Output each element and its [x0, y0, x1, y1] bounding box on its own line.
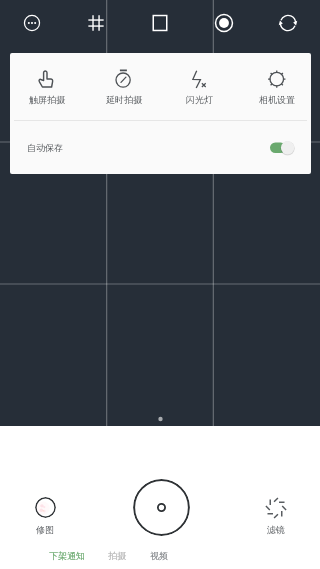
staticText: 修图 [36, 524, 54, 535]
staticText: 下架通知 [49, 550, 85, 561]
button[interactable]: 拍摄 [102, 545, 132, 566]
button[interactable]: Switch camera [256, 0, 320, 45]
staticText: 延时拍摄 [106, 94, 142, 105]
button[interactable]: 自动保存 [10, 121, 311, 174]
staticText: 滤镜 [267, 524, 285, 535]
button[interactable]: 视频 [144, 545, 174, 566]
button[interactable]: 下架通知 [43, 545, 91, 566]
button[interactable]: 修图 [25, 497, 65, 535]
button[interactable]: 闪光灯 [161, 53, 238, 120]
button[interactable]: 相机设置 [238, 53, 311, 120]
button[interactable]: Aspect ratio [128, 0, 192, 45]
staticText: 闪光灯 [186, 94, 213, 105]
staticText: 拍摄 [108, 550, 126, 561]
button[interactable]: Shutter [133, 479, 190, 536]
button[interactable]: Auto save [270, 141, 294, 155]
button[interactable]: 触屏拍摄 [10, 53, 85, 120]
staticText: 视频 [150, 550, 168, 561]
staticText: 触屏拍摄 [29, 94, 65, 105]
button[interactable]: 滤镜 [256, 497, 296, 535]
button[interactable]: 延时拍摄 [85, 53, 162, 120]
button[interactable]: More options [0, 0, 64, 45]
button[interactable]: Shutter mode [192, 0, 256, 45]
staticText: 相机设置 [259, 94, 295, 105]
staticText: 自动保存 [27, 142, 63, 153]
button[interactable]: Grid lines [64, 0, 128, 45]
